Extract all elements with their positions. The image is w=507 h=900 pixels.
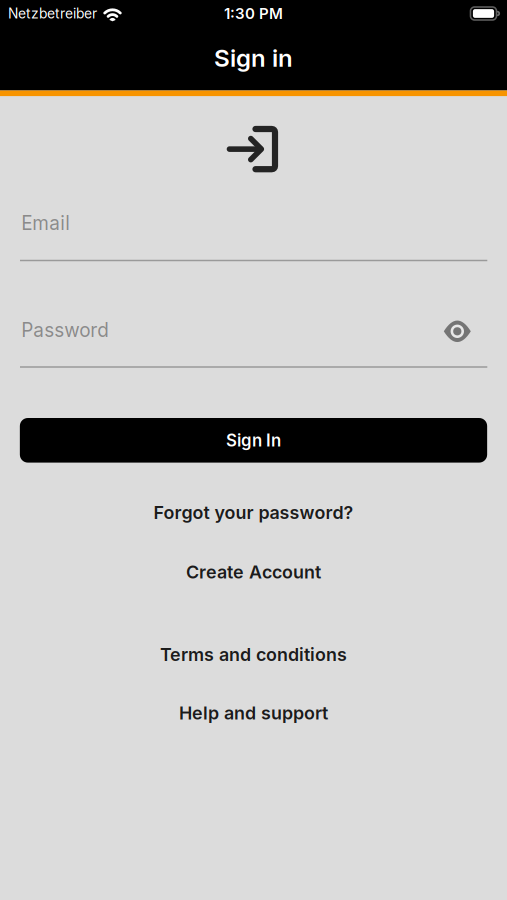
staticText: Password (21, 318, 109, 341)
staticText: Email (21, 211, 70, 234)
staticText: 1:30 PM (224, 4, 283, 23)
button[interactable]: Email (20, 203, 487, 261)
staticText: Sign in (214, 43, 293, 73)
staticText: Help and support (179, 702, 328, 724)
button[interactable]: Help and support (179, 702, 328, 724)
staticText: Netzbetreiber (8, 5, 97, 22)
staticText: Forgot your password? (153, 502, 353, 523)
staticText: Create Account (186, 561, 321, 583)
button[interactable]: Show password (440, 314, 474, 348)
button[interactable]: Forgot your password? (153, 502, 353, 523)
button[interactable]: Sign In (20, 418, 487, 463)
button[interactable]: Password (20, 310, 487, 368)
button[interactable]: Terms and conditions (160, 644, 347, 665)
staticText: Terms and conditions (160, 644, 347, 665)
staticText: Sign In (226, 430, 281, 450)
button[interactable]: Create Account (186, 561, 321, 583)
